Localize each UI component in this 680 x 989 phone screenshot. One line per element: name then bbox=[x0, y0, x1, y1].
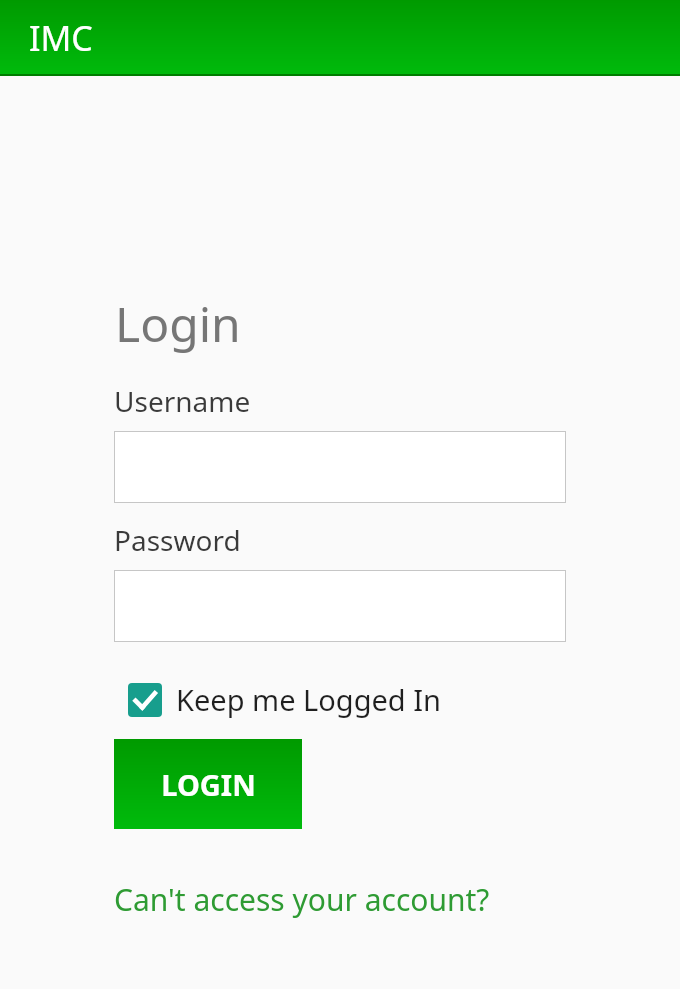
staticText: Can't access your account? bbox=[114, 879, 490, 920]
button[interactable] bbox=[114, 431, 566, 503]
staticText: Keep me Logged In bbox=[176, 680, 441, 719]
staticText: Login bbox=[115, 291, 241, 356]
staticText: IMC bbox=[29, 15, 93, 61]
staticText: Username bbox=[114, 382, 251, 420]
staticText: LOGIN bbox=[161, 765, 256, 804]
button[interactable] bbox=[114, 570, 566, 642]
button[interactable]: Can't access your account? bbox=[114, 877, 490, 922]
staticText: Password bbox=[114, 521, 241, 559]
other: Keep me logged in checkbox, checked bbox=[128, 683, 162, 717]
button[interactable]: LOGIN bbox=[114, 739, 302, 829]
button[interactable]: Keep me logged in checkbox, checked bbox=[127, 678, 442, 721]
